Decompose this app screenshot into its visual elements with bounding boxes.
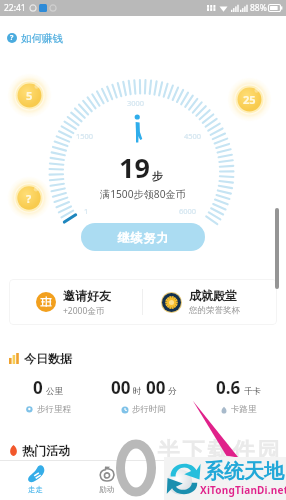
staticText: 4500 — [184, 131, 202, 141]
staticText: 88% — [250, 2, 267, 14]
staticText: 公里 — [46, 386, 63, 397]
staticText: 热门活动 — [22, 443, 70, 458]
staticText: 5 — [26, 88, 33, 103]
button[interactable]: 走走 — [0, 460, 71, 500]
button[interactable]: 发现 — [142, 460, 214, 500]
staticText: ? — [26, 191, 32, 206]
staticText: 时 — [133, 386, 142, 397]
button[interactable]: 00 — [96, 374, 191, 416]
button[interactable]: 0 — [0, 374, 96, 416]
staticText: 走走 — [28, 485, 43, 494]
button[interactable]: 成就殿堂 — [143, 279, 277, 325]
staticText: 0 — [33, 376, 43, 399]
button[interactable]: 0.6 — [191, 374, 286, 416]
staticText: 1500 — [76, 131, 94, 141]
staticText: 邀请好友 — [63, 288, 111, 303]
staticText: 步行时间 — [132, 404, 166, 415]
staticText: 步 — [152, 169, 163, 183]
staticText: 25 — [243, 92, 256, 107]
button[interactable]: 我的 — [214, 460, 286, 500]
staticText: 今日数据 — [24, 351, 72, 366]
staticText: 卡路里 — [231, 404, 257, 415]
staticText: 分 — [168, 386, 177, 397]
staticText: 步行里程 — [37, 404, 71, 415]
staticText: 6000 — [179, 206, 197, 216]
staticText: 满1500步领80金币 — [100, 187, 186, 201]
staticText: 00 — [111, 376, 131, 399]
staticText: 22:41 — [4, 2, 26, 14]
staticText: 励动 — [99, 485, 114, 494]
staticText: XiTongTianDi.net — [200, 483, 286, 497]
staticText: 00 — [146, 376, 166, 399]
staticText: 半下载件园 — [156, 437, 281, 465]
staticText: 系统天地 — [204, 459, 284, 484]
staticText: +2000金币 — [63, 305, 105, 317]
staticText: 3000 — [127, 98, 145, 108]
staticText: 您的荣誉奖杯 — [189, 305, 240, 316]
staticText: 千卡 — [244, 386, 261, 397]
button[interactable]: ? — [7, 31, 63, 45]
staticText: 0.6 — [216, 376, 241, 399]
staticText: 继续努力 — [117, 230, 169, 245]
staticText: ? — [10, 33, 14, 43]
button[interactable]: 继续努力 — [81, 223, 205, 251]
staticText: 1 — [84, 206, 89, 216]
other: 励动 — [99, 467, 115, 482]
staticText: 成就殿堂 — [189, 288, 237, 303]
button[interactable]: 邀请好友 — [9, 279, 142, 325]
staticText: 19 — [119, 149, 150, 186]
button[interactable]: 励动 — [71, 460, 142, 500]
other: 走走 — [27, 466, 45, 483]
staticText: 如何赚钱 — [21, 32, 63, 45]
